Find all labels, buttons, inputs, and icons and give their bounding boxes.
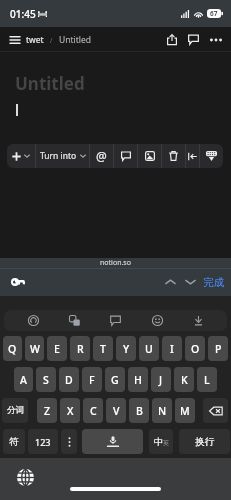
staticText: notion.so <box>100 258 131 268</box>
button[interactable]: Z <box>37 398 57 423</box>
button[interactable]: twet <box>26 34 92 46</box>
button[interactable]: 分词 <box>2 398 28 423</box>
button[interactable]: F <box>82 367 102 392</box>
button[interactable]: Comment <box>114 144 137 168</box>
staticText: Untitled <box>15 72 85 95</box>
staticText: C <box>90 404 97 418</box>
button[interactable]: R <box>70 336 90 361</box>
staticText: S <box>43 373 49 387</box>
button[interactable]: U <box>139 336 159 361</box>
button[interactable]: S <box>36 367 56 392</box>
button[interactable]: B <box>129 398 149 423</box>
staticText: Q <box>8 342 17 356</box>
staticText: Untitled <box>59 34 92 46</box>
staticText: Y <box>123 342 130 356</box>
button[interactable]: C <box>83 398 103 423</box>
button[interactable]: 符 <box>3 429 25 454</box>
button[interactable]: M <box>175 398 195 423</box>
staticText: I <box>170 342 174 356</box>
button[interactable]: 完成 <box>201 273 226 292</box>
staticText: G <box>111 373 119 387</box>
button[interactable]: More options <box>206 30 225 49</box>
button[interactable]: A <box>14 367 33 392</box>
button[interactable]: Insert block <box>7 144 35 168</box>
button[interactable]: Outdent <box>186 144 199 168</box>
staticText: K <box>181 373 188 387</box>
button[interactable]: Download <box>186 310 210 331</box>
staticText: Turn into <box>40 150 77 162</box>
button[interactable]: X <box>60 398 80 423</box>
button[interactable]: Share <box>162 30 181 49</box>
button[interactable]: Image <box>138 144 161 168</box>
button[interactable]: P <box>208 336 228 361</box>
staticText: M <box>180 404 190 418</box>
staticText: 符 <box>9 436 19 448</box>
staticText: 分词 <box>7 405 24 416</box>
button[interactable]: More keys <box>61 429 77 454</box>
button[interactable]: G <box>105 367 125 392</box>
button[interactable]: E <box>47 336 67 361</box>
staticText: 67 <box>210 9 218 18</box>
staticText: O <box>191 342 200 356</box>
button[interactable]: 换行 <box>179 429 230 454</box>
staticText: N <box>158 404 167 418</box>
button[interactable]: Menu <box>7 32 23 48</box>
staticText: P <box>215 342 222 356</box>
staticText: 换行 <box>195 436 214 448</box>
staticText: F <box>89 373 95 387</box>
staticText: U <box>145 342 153 356</box>
staticText: 123 <box>35 436 51 448</box>
button[interactable]: J <box>151 367 171 392</box>
button[interactable]: W <box>25 336 44 361</box>
button[interactable]: N <box>152 398 172 423</box>
button[interactable]: Y <box>116 336 136 361</box>
button[interactable]: Space <box>82 429 143 454</box>
button[interactable]: L <box>197 367 217 392</box>
staticText: V <box>113 404 120 418</box>
staticText: J <box>159 373 163 387</box>
button[interactable]: I <box>162 336 182 361</box>
staticText: R <box>77 342 84 356</box>
button[interactable]: H <box>128 367 148 392</box>
button[interactable]: Backspace <box>203 398 228 423</box>
staticText: Z <box>44 404 51 418</box>
staticText: T <box>100 342 106 356</box>
staticText: D <box>65 373 73 387</box>
button[interactable]: Delete <box>162 144 185 168</box>
staticText: H <box>134 373 142 387</box>
button[interactable]: Passwords <box>9 273 27 291</box>
button[interactable]: Q <box>3 336 22 361</box>
staticText: @ <box>96 148 107 164</box>
staticText: 中 <box>154 436 163 447</box>
button[interactable]: Turn into <box>36 144 89 168</box>
button[interactable]: D <box>59 367 79 392</box>
staticText: L <box>204 373 210 387</box>
staticText: E <box>54 342 60 356</box>
button[interactable]: T <box>93 336 113 361</box>
button[interactable]: O <box>185 336 205 361</box>
button[interactable]: Mention <box>90 144 113 168</box>
staticText: 01:45 <box>10 7 36 21</box>
button[interactable]: V <box>106 398 126 423</box>
button[interactable]: 123 <box>28 429 58 454</box>
button[interactable]: Translate <box>62 310 86 331</box>
staticText: X <box>67 404 74 418</box>
button[interactable]: Previous field <box>161 273 179 291</box>
staticText: A <box>20 373 27 387</box>
button[interactable]: Comments <box>184 30 203 49</box>
staticText: 英 <box>163 439 169 447</box>
staticText: twet <box>26 34 44 46</box>
button[interactable]: Next field <box>181 273 199 291</box>
button[interactable]: Emoji <box>145 310 169 331</box>
staticText: / <box>44 35 59 45</box>
button[interactable]: Change keyboard language <box>17 469 39 491</box>
button[interactable]: Voice input <box>21 310 45 331</box>
staticText: 完成 <box>203 276 224 289</box>
staticText: W <box>30 342 40 356</box>
staticText: B <box>136 404 143 418</box>
button[interactable]: Hide keyboard <box>200 144 223 168</box>
button[interactable]: 中 <box>149 429 173 454</box>
button[interactable]: K <box>174 367 194 392</box>
button[interactable]: Clipboard <box>103 310 127 331</box>
